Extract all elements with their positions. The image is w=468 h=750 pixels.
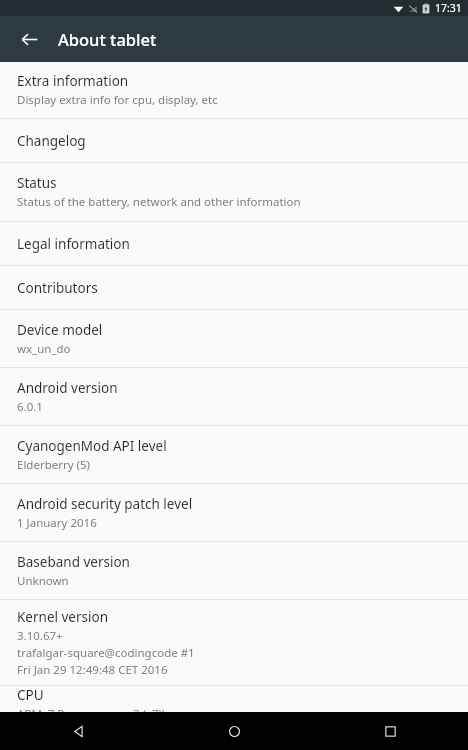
button[interactable]: Device model	[0, 310, 468, 367]
button[interactable]: Android version	[0, 368, 468, 425]
staticText: Fri Jan 29 12:49:48 CET 2016	[17, 662, 168, 678]
staticText: trafalgar-square@codingcode #1	[17, 645, 195, 661]
staticText: Extra information	[17, 72, 129, 90]
staticText: CPU	[17, 686, 44, 704]
staticText: 1 January 2016	[17, 515, 97, 531]
button[interactable]: Kernel version	[0, 600, 468, 685]
staticText: Unknown	[17, 573, 69, 589]
staticText: 3.10.67+	[17, 628, 63, 644]
staticText: Display extra info for cpu, display, etc	[17, 92, 218, 108]
button[interactable]: Home	[156, 712, 312, 750]
staticText: Baseband version	[17, 553, 130, 571]
button[interactable]: Changelog	[0, 119, 468, 162]
button[interactable]: CPU	[0, 686, 468, 712]
staticText: Android version	[17, 379, 118, 397]
button[interactable]: Android security patch level	[0, 484, 468, 541]
button[interactable]: Back	[12, 22, 46, 56]
staticText: Changelog	[17, 132, 86, 150]
button[interactable]: Baseband version	[0, 542, 468, 599]
staticText: Kernel version	[17, 608, 109, 626]
button[interactable]: Back	[0, 712, 156, 750]
staticText: Status of the battery, network and other…	[17, 194, 301, 210]
staticText: 17:31	[435, 1, 462, 15]
button[interactable]: Status	[0, 163, 468, 221]
button[interactable]: Contributors	[0, 266, 468, 309]
staticText: Device model	[17, 321, 103, 339]
staticText: 6.0.1	[17, 399, 43, 415]
staticText: ARMv7 Processor rev 3 (v7l)	[17, 706, 165, 712]
button[interactable]: CyanogenMod API level	[0, 426, 468, 483]
staticText: About tablet	[58, 28, 157, 50]
staticText: Status	[17, 174, 57, 192]
staticText: wx_un_do	[17, 341, 71, 357]
button[interactable]: Recent apps	[312, 712, 468, 750]
staticText: Contributors	[17, 279, 98, 297]
staticText: Android security patch level	[17, 495, 193, 513]
staticText: Legal information	[17, 235, 130, 253]
button[interactable]: Extra information	[0, 62, 468, 118]
button[interactable]: Legal information	[0, 222, 468, 265]
staticText: Elderberry (5)	[17, 457, 91, 473]
staticText: CyanogenMod API level	[17, 437, 167, 455]
